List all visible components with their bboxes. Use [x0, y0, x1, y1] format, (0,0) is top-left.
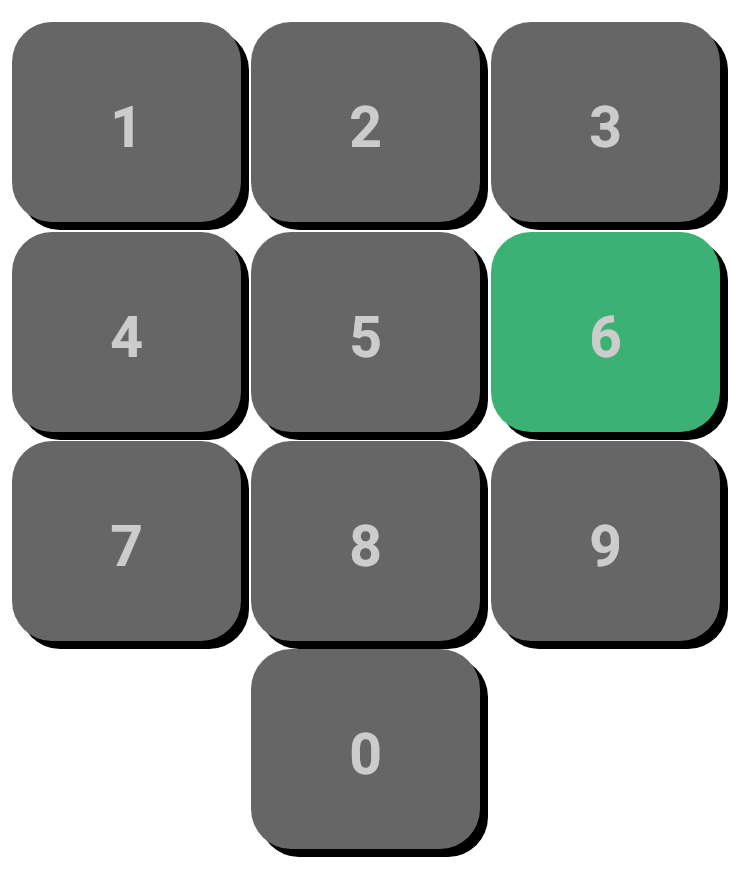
button[interactable]: 5: [251, 232, 480, 432]
button[interactable]: 0: [251, 649, 480, 849]
staticText: 2: [349, 94, 382, 161]
staticText: 0: [349, 721, 382, 788]
staticText: 7: [110, 513, 143, 580]
staticText: 5: [349, 304, 382, 371]
button[interactable]: 8: [251, 441, 480, 641]
staticText: 3: [589, 94, 622, 161]
button[interactable]: 7: [12, 441, 241, 641]
staticText: 6: [589, 304, 622, 371]
button[interactable]: 3: [491, 22, 720, 222]
button[interactable]: 2: [251, 22, 480, 222]
staticText: 4: [110, 304, 143, 371]
staticText: 1: [110, 94, 143, 161]
button[interactable]: 1: [12, 22, 241, 222]
button[interactable]: 9: [491, 441, 720, 641]
staticText: 9: [589, 513, 622, 580]
button[interactable]: 4: [12, 232, 241, 432]
button[interactable]: 6: [491, 232, 720, 432]
staticText: 8: [349, 513, 382, 580]
